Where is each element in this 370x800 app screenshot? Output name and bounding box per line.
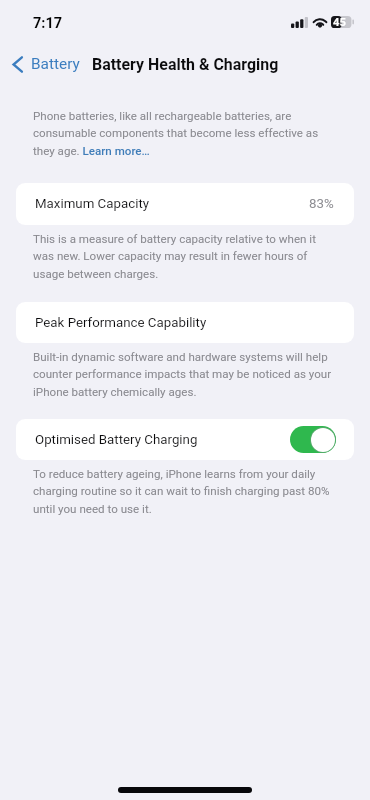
button[interactable]: Maximum Capacity <box>16 183 354 225</box>
staticText: 45 <box>333 16 346 29</box>
staticText: This is a measure of battery capacity re… <box>33 232 333 281</box>
staticText: Built-in dynamic software and hardware s… <box>33 350 333 399</box>
staticText: Battery Health & Charging <box>92 55 279 74</box>
button[interactable]: Peak Performance Capability <box>16 302 354 343</box>
staticText: Maximum Capacity <box>35 196 150 212</box>
staticText: 83% <box>309 196 334 212</box>
button[interactable]: Optimised Battery Charging toggle <box>290 426 336 453</box>
staticText: Battery <box>31 55 80 73</box>
staticText: 7:17 <box>33 15 63 32</box>
staticText: Phone batteries, like all rechargeable b… <box>33 109 333 158</box>
staticText: To reduce battery ageing, iPhone learns … <box>33 467 333 516</box>
staticText: Optimised Battery Charging <box>35 432 198 448</box>
button[interactable]: Battery <box>0 52 88 76</box>
staticText: Peak Performance Capability <box>35 315 207 331</box>
